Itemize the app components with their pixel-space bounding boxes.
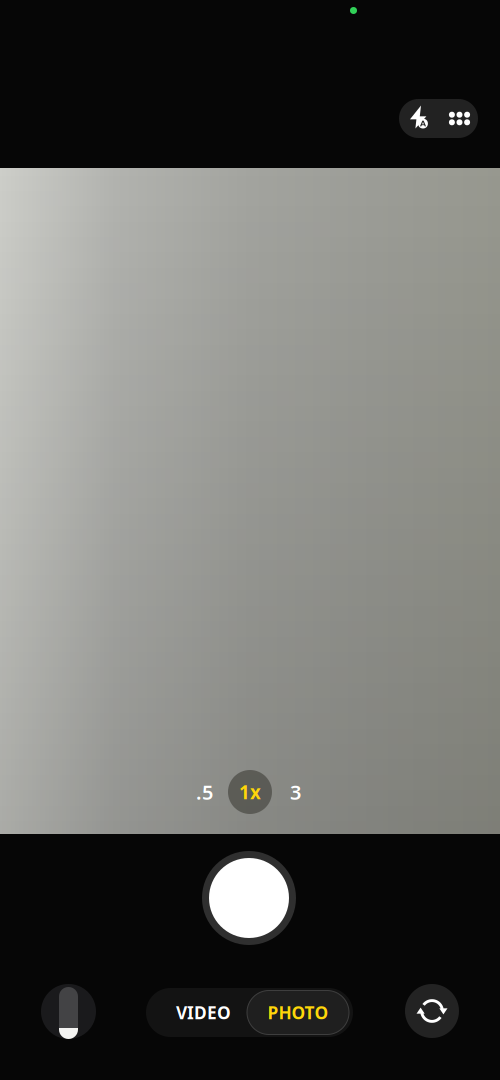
- staticText: 3: [290, 779, 301, 805]
- staticText: 1x: [239, 780, 261, 804]
- button[interactable]: 3: [280, 770, 310, 814]
- button[interactable]: VIDEO: [153, 988, 254, 1037]
- button[interactable]: Flash and camera controls: [399, 99, 478, 138]
- button[interactable]: .5: [190, 770, 220, 814]
- staticText: VIDEO: [176, 1001, 231, 1024]
- staticText: PHOTO: [267, 1001, 328, 1024]
- button[interactable]: PHOTO: [247, 990, 349, 1034]
- button[interactable]: Take photo: [202, 851, 296, 945]
- button[interactable]: 1x: [228, 770, 272, 814]
- staticText: .5: [196, 779, 213, 805]
- button[interactable]: Switch camera: [405, 984, 459, 1038]
- button[interactable]: Photo library: [41, 984, 96, 1039]
